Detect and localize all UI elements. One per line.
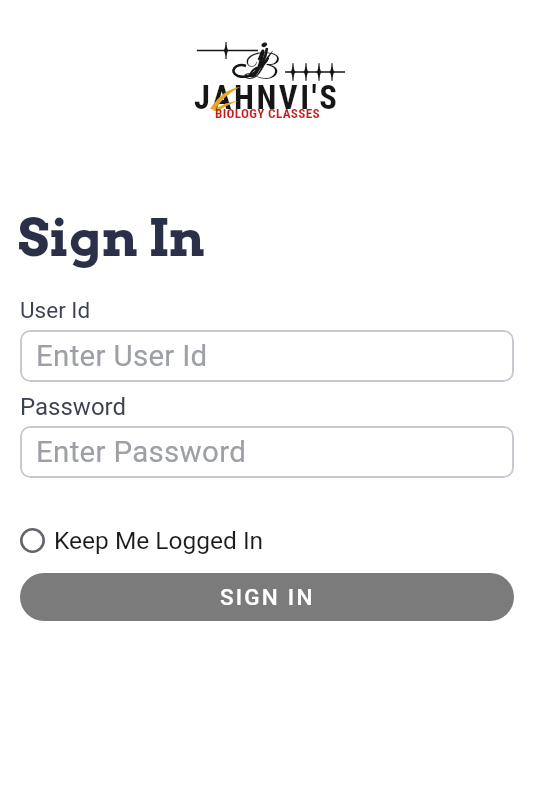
staticText: BIOLOGY CLASSES <box>215 106 320 121</box>
staticText: User Id <box>20 297 91 323</box>
button[interactable]: Enter Password <box>20 426 514 478</box>
button[interactable]: Keep Me Logged In <box>20 526 264 555</box>
staticText: Sign In <box>18 207 206 269</box>
staticText: B <box>244 51 278 91</box>
staticText: SIGN IN <box>220 584 315 610</box>
staticText: Enter User Id <box>36 339 208 374</box>
staticText: Password <box>20 393 127 421</box>
staticText: Keep Me Logged In <box>54 526 264 555</box>
staticText: Enter Password <box>36 435 247 470</box>
staticText: JAHNVI'S <box>194 79 340 117</box>
staticText: j <box>258 26 268 76</box>
button[interactable]: Enter User Id <box>20 330 514 382</box>
button[interactable]: SIGN IN <box>20 573 514 621</box>
